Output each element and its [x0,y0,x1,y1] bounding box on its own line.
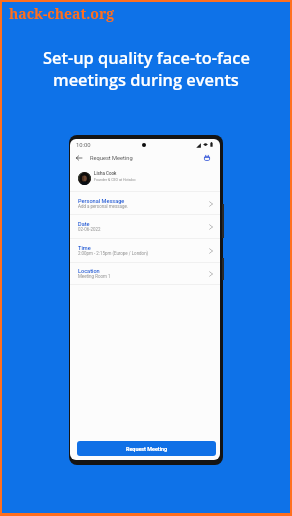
staticText: Personal Message [78,198,125,205]
button[interactable]: Calendar [202,153,212,163]
staticText: Set-up quality face-to-face [43,46,250,68]
button[interactable]: Location [70,262,220,285]
staticText: Request Meeting [90,155,133,162]
button[interactable]: Lisha Cook [70,164,220,192]
button[interactable]: Time [70,239,220,263]
button[interactable]: Date [70,215,220,239]
staticText: Lisha Cook [94,171,117,176]
staticText: Time [78,245,91,252]
staticText: Location [78,268,100,275]
staticText: Date [78,221,90,228]
button[interactable]: Request Meeting [77,441,216,456]
button[interactable]: Personal Message [70,192,220,215]
staticText: Founder & CEO at Hotaloo [94,178,136,182]
staticText: 10:00 [76,142,91,149]
staticText: 2:00pm - 2:15pm (Europe / London) [78,251,149,256]
staticText: 02-06-2022 [78,227,101,232]
button[interactable]: Back [74,153,84,163]
staticText: Meeting Room 1 [78,274,111,279]
staticText: hack-cheat.org [9,4,115,23]
staticText: Add a personal message. [78,204,128,209]
staticText: Request Meeting [126,446,168,452]
staticText: meetings during events [53,68,239,90]
